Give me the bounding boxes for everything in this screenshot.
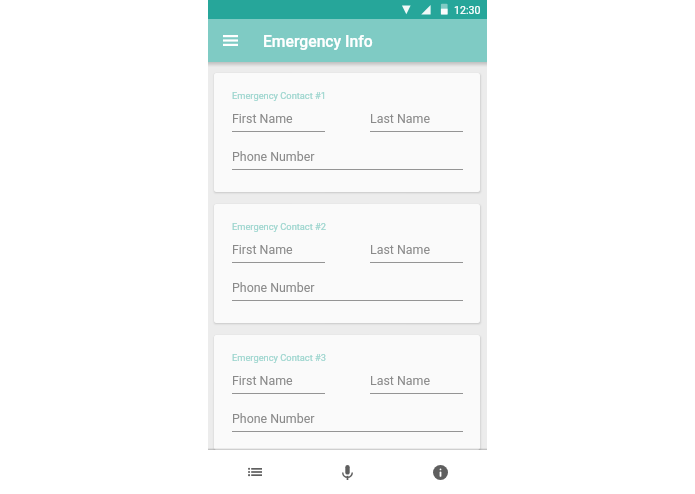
staticText: Phone Number bbox=[232, 280, 315, 295]
staticText: Last Name bbox=[370, 242, 430, 257]
button[interactable]: Emergency Contact #2 bbox=[214, 204, 480, 323]
button[interactable]: Voice input bbox=[301, 450, 394, 494]
staticText: Emergency Contact #1 bbox=[232, 90, 327, 101]
button[interactable]: List bbox=[208, 450, 301, 494]
button[interactable]: Open navigation menu bbox=[216, 26, 244, 54]
staticText: Last Name bbox=[370, 111, 430, 126]
staticText: First Name bbox=[232, 242, 293, 257]
staticText: Emergency Info bbox=[263, 32, 373, 50]
staticText: Last Name bbox=[370, 373, 430, 388]
button[interactable]: Emergency Contact #3 bbox=[214, 335, 480, 450]
staticText: Emergency Contact #2 bbox=[232, 221, 327, 232]
staticText: First Name bbox=[232, 373, 293, 388]
staticText: Phone Number bbox=[232, 411, 315, 426]
staticText: 12:30 bbox=[454, 4, 481, 16]
staticText: First Name bbox=[232, 111, 293, 126]
button[interactable]: Info bbox=[394, 450, 487, 494]
button[interactable]: Emergency Contact #1 bbox=[214, 73, 480, 192]
staticText: Emergency Contact #3 bbox=[232, 352, 327, 363]
staticText: Phone Number bbox=[232, 149, 315, 164]
